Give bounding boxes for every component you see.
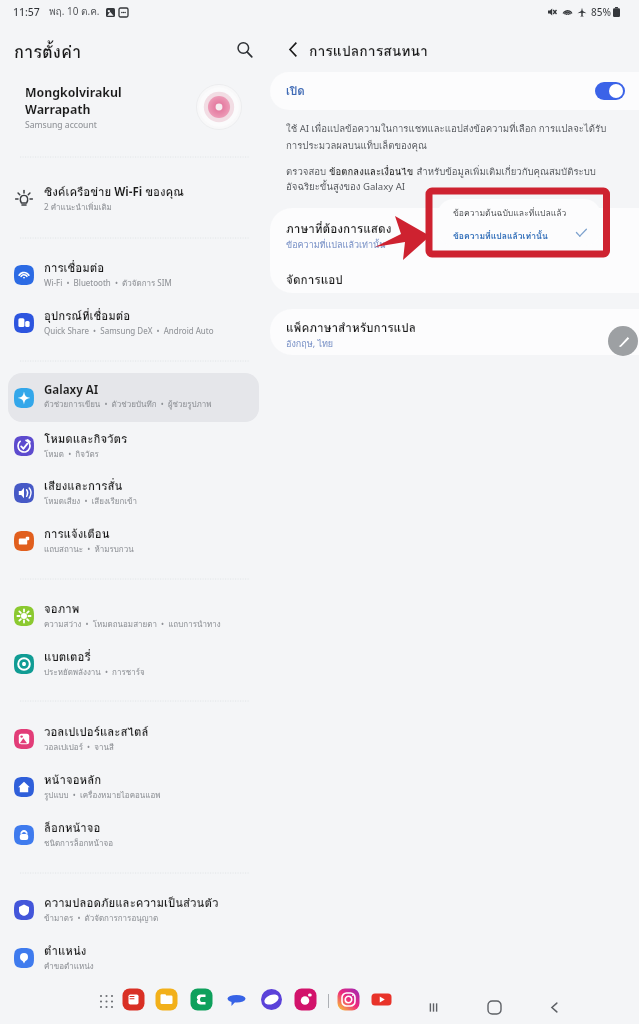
button[interactable]: Internet [259, 987, 284, 1012]
button[interactable]: ภาษาที่ต้องการแสดง [270, 208, 639, 260]
button[interactable]: หน้าจอหลัก [8, 762, 259, 811]
button[interactable]: Mongkolvirakul [0, 75, 270, 141]
staticText: โหมดเสียง • เสียงเรียกเข้า [44, 495, 138, 508]
staticText: ซิงค์เครือข่าย Wi-Fi ของคุณ [44, 183, 184, 201]
staticText: การแจ้งเตือน [44, 525, 110, 543]
staticText: Warrapath [25, 101, 91, 118]
staticText: วอลเปเปอร์ • จานสี [44, 741, 114, 754]
button[interactable]: แบตเตอรี่ [8, 639, 259, 688]
staticText: วอลเปเปอร์และสไตล์ [44, 723, 149, 741]
button[interactable]: Phone [189, 987, 214, 1012]
staticText: 85% [591, 5, 611, 19]
button[interactable]: การเชื่อมต่อ [8, 250, 259, 299]
staticText: แบตเตอรี่ [44, 648, 91, 666]
staticText: สำหรับข้อมูลเพิ่มเติมเกี่ยวกับคุณสมบัติร… [414, 164, 596, 179]
button[interactable]: อุปกรณ์ที่เชื่อมต่อ [8, 298, 259, 347]
button[interactable]: Toggle conversation translation [595, 82, 625, 100]
staticText: การแปลการสนทนา [309, 40, 428, 62]
staticText: อังกฤษ, ไทย [286, 337, 334, 351]
button[interactable]: Back [278, 34, 308, 64]
button[interactable]: เสียงและการสั่น [8, 468, 259, 517]
staticText: หน้าจอหลัก [44, 771, 102, 789]
button[interactable]: ข้อความที่แปลแล้วเท่านั้น [437, 223, 601, 246]
button[interactable]: ล็อกหน้าจอ [8, 810, 259, 859]
button[interactable]: Camera [293, 987, 318, 1012]
button[interactable]: Recents [420, 994, 446, 1020]
button[interactable]: YouTube [369, 987, 394, 1012]
button[interactable]: ซิงค์เครือข่าย Wi-Fi ของคุณ [8, 174, 259, 223]
button[interactable]: Edit [608, 326, 638, 356]
button[interactable]: การแจ้งเตือน [8, 516, 259, 565]
staticText: ข้อความต้นฉบับและที่แปลแล้ว [453, 206, 567, 220]
staticText: อัจฉริยะขั้นสูงของ Galaxy AI [286, 179, 406, 194]
staticText: ข้อความที่แปลแล้วเท่านั้น [453, 229, 548, 243]
staticText: ล็อกหน้าจอ [44, 819, 101, 837]
staticText: ใช้ AI เพื่อแปลข้อความในการแชทและแอปส่งข… [286, 121, 618, 154]
button[interactable]: Home [481, 994, 507, 1020]
staticText: Galaxy AI [44, 382, 99, 398]
button[interactable]: Search [229, 34, 259, 64]
staticText: เสียงและการสั่น [44, 477, 123, 495]
staticText: พฤ. 10 ต.ค. [49, 4, 100, 20]
staticText: การเชื่อมต่อ [44, 259, 105, 277]
button[interactable]: แพ็คภาษาสำหรับการแปล [270, 309, 639, 355]
button[interactable]: จอภาพ [8, 591, 259, 640]
button[interactable]: วอลเปเปอร์และสไตล์ [8, 714, 259, 763]
button[interactable]: ข้อความต้นฉบับและที่แปลแล้ว [437, 199, 601, 223]
button[interactable]: Messages [224, 987, 249, 1012]
staticText: โหมดและกิจวัตร [44, 430, 128, 448]
staticText: แพ็คภาษาสำหรับการแปล [286, 318, 416, 337]
staticText: Wi-Fi • Bluetooth • ตัวจัดการ SIM [44, 277, 172, 290]
button[interactable]: จัดการแอป [270, 260, 639, 293]
button[interactable]: ความปลอดภัยและความเป็นส่วนตัว [8, 885, 259, 934]
staticText: ภาษาที่ต้องการแสดง [286, 219, 392, 238]
button[interactable]: Files [154, 987, 179, 1012]
staticText: Quick Share • Samsung DeX • Android Auto [44, 325, 214, 336]
staticText: Samsung account [25, 119, 97, 131]
staticText: ชนิดการล็อกหน้าจอ [44, 837, 114, 850]
staticText: ประหยัดพลังงาน • การชาร์จ [44, 666, 145, 679]
staticText: ข้อความที่แปลแล้วเท่านั้น [286, 238, 386, 252]
staticText: จอภาพ [44, 600, 80, 618]
staticText: 11:57 [13, 5, 40, 19]
button[interactable]: SmartThings [121, 987, 146, 1012]
staticText: โหมด • กิจวัตร [44, 448, 99, 461]
staticText: ตัวช่วยการเขียน • ตัวช่วยบันทึก • ผู้ช่ว… [44, 398, 212, 411]
staticText: เปิด [286, 82, 305, 100]
staticText: ความปลอดภัยและความเป็นส่วนตัว [44, 894, 219, 912]
staticText: ตรวจสอบ [286, 164, 329, 179]
button[interactable]: เปิด [270, 72, 639, 110]
staticText: ข้ามาตร • ตัวจัดการการอนุญาต [44, 912, 159, 925]
staticText: ข้อตกลงและเงื่อนไข [329, 164, 414, 179]
button[interactable]: Back [541, 994, 567, 1020]
staticText: ความสว่าง • โหมดถนอมสายตา • แถบการนำทาง [44, 618, 221, 631]
staticText: ตำแหน่ง [44, 942, 87, 960]
button[interactable]: Apps [95, 990, 117, 1012]
button[interactable]: Instagram [336, 987, 361, 1012]
staticText: Mongkolvirakul [25, 84, 122, 101]
staticText: คำขอตำแหน่ง [44, 960, 94, 973]
staticText: 2 คำแนะนำเพิ่มเติม [44, 201, 112, 214]
staticText: จัดการแอป [286, 270, 343, 289]
button[interactable]: โหมดและกิจวัตร [8, 421, 259, 470]
staticText: แถบสถานะ • ห้ามรบกวน [44, 543, 134, 556]
staticText: การตั้งค่า [14, 39, 82, 65]
button[interactable]: Galaxy AI [8, 373, 259, 422]
staticText: อุปกรณ์ที่เชื่อมต่อ [44, 307, 131, 325]
staticText: รูปแบบ • เครื่องหมายไอคอนแอพ [44, 789, 161, 802]
button[interactable]: ตำแหน่ง [8, 933, 259, 982]
